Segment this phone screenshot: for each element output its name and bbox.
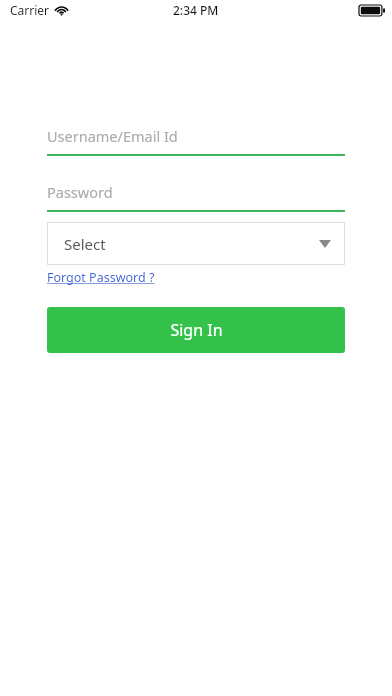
staticText: Sign In (170, 319, 223, 341)
staticText: Select (64, 234, 106, 254)
button[interactable]: Username/Email Id (47, 118, 345, 156)
staticText: Forgot Password ? (47, 269, 155, 286)
button[interactable]: Sign In (47, 307, 345, 353)
button[interactable]: Select (47, 222, 345, 265)
staticText: Carrier (10, 2, 50, 18)
staticText: Password (47, 182, 113, 202)
staticText: Username/Email Id (47, 126, 178, 146)
button[interactable]: Forgot Password ? (47, 269, 155, 286)
button[interactable]: Password (47, 174, 345, 212)
staticText: 2:34 PM (173, 2, 219, 18)
